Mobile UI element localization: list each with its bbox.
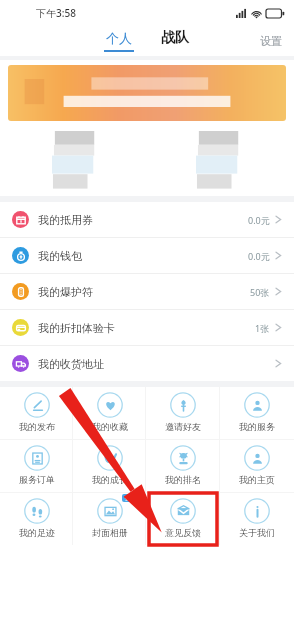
button[interactable]: 设置 [260, 34, 294, 48]
button[interactable]: 服务订单 [0, 440, 73, 492]
staticText: 我的收货地址 [38, 357, 104, 371]
staticText: 邀请好友 [165, 421, 201, 432]
staticText: 我的足迹 [19, 527, 55, 538]
button[interactable]: 我的抵用券 [0, 202, 294, 237]
staticText: 我的钱包 [38, 249, 82, 263]
staticText: 服务订单 [19, 474, 55, 485]
button[interactable]: 我的收藏 [73, 387, 146, 439]
staticText: 0.0元 [248, 250, 270, 262]
button[interactable]: 个人 [100, 30, 138, 52]
staticText: 0.0元 [248, 214, 270, 226]
staticText: 我的抵用券 [38, 213, 93, 227]
button[interactable]: 我的成长 [73, 440, 146, 492]
button[interactable]: 我的钱包 [0, 238, 294, 273]
button[interactable]: 我的足迹 [0, 493, 73, 545]
button[interactable]: 我的服务 [220, 387, 294, 439]
button[interactable]: 邀请好友 [146, 387, 220, 439]
button[interactable]: 关于我们 [220, 493, 294, 545]
staticText: 我的排名 [165, 474, 201, 485]
staticText: 我的成长 [92, 474, 128, 485]
staticText: 下午3:58 [36, 6, 76, 20]
staticText: 封面相册 [92, 527, 128, 538]
staticText: 个人 [106, 30, 132, 46]
staticText: 我的发布 [19, 421, 55, 432]
staticText: 我的收藏 [92, 421, 128, 432]
button[interactable]: 意见反馈 [146, 493, 220, 545]
staticText: 关于我们 [239, 527, 275, 538]
staticText: 50张 [250, 286, 270, 298]
staticText: 我的折扣体验卡 [38, 321, 115, 335]
button[interactable]: 我的折扣体验卡 [0, 310, 294, 345]
staticText: 我的爆护符 [38, 285, 93, 299]
staticText: 意见反馈 [165, 527, 201, 538]
staticText: 1张 [255, 322, 270, 334]
button[interactable]: 封面相册 [73, 493, 146, 545]
staticText: 战队 [161, 29, 189, 47]
button[interactable] [8, 65, 286, 121]
staticText: 我的服务 [239, 421, 275, 432]
staticText: 设置 [260, 34, 282, 48]
button[interactable]: 我的排名 [146, 440, 220, 492]
button[interactable]: 战队 [156, 29, 194, 53]
button[interactable]: 我的主页 [220, 440, 294, 492]
button[interactable]: 我的收货地址 [0, 346, 294, 381]
staticText: 我的主页 [239, 474, 275, 485]
staticText: 去完善 [125, 495, 140, 501]
button[interactable]: 我的爆护符 [0, 274, 294, 309]
button[interactable]: 我的发布 [0, 387, 73, 439]
